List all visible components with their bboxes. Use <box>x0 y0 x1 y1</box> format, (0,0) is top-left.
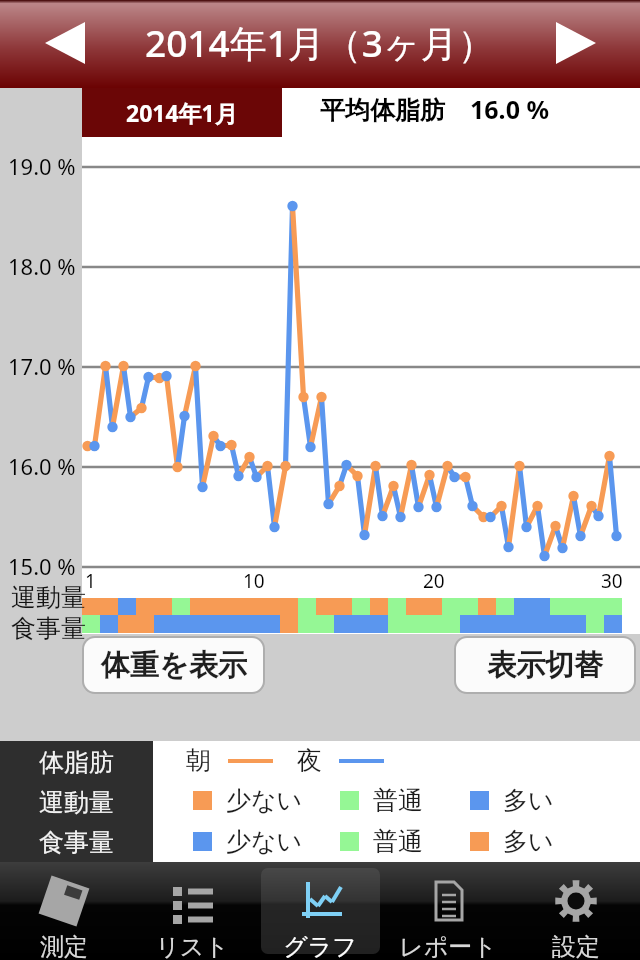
staticText: 15.0 % <box>8 551 76 581</box>
staticText: 少ない <box>226 826 303 857</box>
staticText: グラフ <box>283 932 357 960</box>
staticText: 夜 <box>297 745 322 776</box>
staticText: レポート <box>399 932 497 960</box>
staticText: 普通 <box>373 785 423 816</box>
button[interactable]: 2014年1月 <box>82 88 282 137</box>
staticText: 平均体脂肪 16.0 % <box>320 92 549 126</box>
button[interactable]: 表示切替 <box>456 638 634 692</box>
staticText: 食事量 <box>11 613 86 644</box>
button[interactable]: グラフ <box>256 862 384 960</box>
staticText: 普通 <box>373 826 423 857</box>
staticText: 運動量 <box>11 582 86 613</box>
staticText: 体脂肪 <box>39 747 114 778</box>
staticText: 表示切替 <box>487 647 603 684</box>
staticText: 18.0 % <box>8 251 76 281</box>
staticText: 多い <box>503 826 554 857</box>
staticText: 20 <box>423 568 445 594</box>
staticText: 30 <box>601 568 623 594</box>
staticText: 2014年1月 <box>126 97 238 128</box>
button[interactable]: リスト <box>128 862 256 960</box>
staticText: 多い <box>503 785 554 816</box>
staticText: 朝 <box>186 745 211 776</box>
button[interactable]: Previous month <box>26 10 104 76</box>
staticText: 体重を表示 <box>101 647 247 684</box>
staticText: 2014年1月（3ヶ月） <box>145 17 495 68</box>
staticText: 運動量 <box>39 787 114 818</box>
button[interactable]: Next month <box>537 10 615 76</box>
button[interactable]: 設定 <box>512 862 640 960</box>
staticText: 食事量 <box>39 827 114 858</box>
staticText: 1 <box>85 568 96 594</box>
staticText: 19.0 % <box>8 151 76 181</box>
staticText: 17.0 % <box>8 351 76 381</box>
staticText: 測定 <box>40 932 88 960</box>
button[interactable]: 測定 <box>0 862 128 960</box>
button[interactable]: 体重を表示 <box>84 638 263 692</box>
staticText: 少ない <box>226 785 303 816</box>
staticText: 10 <box>243 568 265 594</box>
staticText: 設定 <box>552 932 600 960</box>
button[interactable]: レポート <box>384 862 512 960</box>
staticText: 16.0 % <box>8 451 76 481</box>
staticText: リスト <box>155 932 229 960</box>
